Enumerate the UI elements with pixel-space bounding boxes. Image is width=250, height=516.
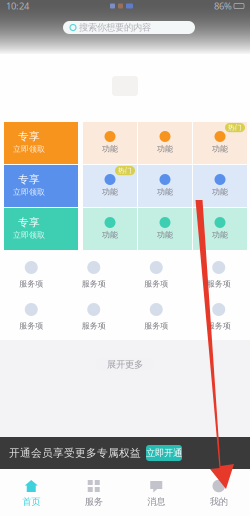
staticText: 立即领取 [13, 144, 45, 154]
staticText: 立即开通 [146, 447, 182, 459]
button[interactable]: 搜索你想要的内容 [63, 21, 195, 34]
button[interactable]: 服务项 [62, 254, 125, 296]
staticText: 立即领取 [13, 187, 45, 197]
button[interactable]: 功能 [138, 208, 192, 250]
staticText: 搜索你想要的内容 [79, 22, 151, 33]
staticText: 我的 [210, 496, 228, 507]
button[interactable]: 专享 [4, 208, 78, 250]
button[interactable]: 功能 [83, 208, 137, 250]
staticText: 功能 [157, 230, 173, 240]
staticText: 功能 [212, 230, 228, 240]
button[interactable]: 服务项 [125, 296, 187, 338]
staticText: 立即领取 [13, 230, 45, 240]
staticText: 功能 [102, 187, 118, 197]
staticText: 服务项 [82, 321, 106, 331]
staticText: 首页 [22, 496, 40, 507]
button[interactable]: 首页 [0, 469, 62, 516]
button[interactable]: 消息 [125, 469, 187, 516]
button[interactable]: 功能 [83, 122, 137, 164]
staticText: 服务 [85, 496, 103, 507]
staticText: 专享 [18, 216, 40, 229]
staticText: 功能 [157, 144, 173, 154]
button[interactable]: 服务项 [125, 254, 187, 296]
staticText: 专享 [18, 130, 40, 143]
button[interactable]: 功能 [193, 165, 247, 207]
button[interactable]: 立即开通 [146, 445, 182, 461]
staticText: 86% [214, 0, 232, 12]
staticText: 服务项 [144, 279, 168, 289]
staticText: 服务项 [144, 321, 168, 331]
staticText: 展开更多 [107, 359, 143, 370]
button[interactable]: 功能 [138, 165, 192, 207]
staticText: 服务项 [19, 321, 43, 331]
staticText: 服务项 [207, 321, 231, 331]
button[interactable]: 专享 [4, 165, 78, 207]
button[interactable]: 展开更多 [95, 358, 155, 371]
staticText: 10:24 [6, 0, 29, 12]
staticText: 消息 [147, 496, 165, 507]
button[interactable]: 功能 [83, 165, 137, 207]
button[interactable]: 服务项 [62, 296, 125, 338]
button[interactable]: 我的 [187, 469, 250, 516]
staticText: 功能 [157, 187, 173, 197]
button[interactable]: 功能 [138, 122, 192, 164]
staticText: 热门 [118, 166, 132, 175]
staticText: 服务项 [82, 279, 106, 289]
button[interactable]: 服务项 [187, 254, 250, 296]
staticText: 功能 [102, 230, 118, 240]
staticText: 功能 [212, 187, 228, 197]
staticText: 专享 [18, 173, 40, 186]
button[interactable]: 专享 [4, 122, 78, 164]
button[interactable]: 服务项 [0, 296, 62, 338]
button[interactable]: 服务项 [187, 296, 250, 338]
button[interactable]: 服务 [62, 469, 125, 516]
staticText: 功能 [102, 144, 118, 154]
staticText: 功能 [212, 144, 228, 154]
staticText: 热门 [228, 123, 242, 132]
button[interactable]: 服务项 [0, 254, 62, 296]
button[interactable]: 功能 [193, 122, 247, 164]
staticText: 服务项 [19, 279, 43, 289]
staticText: 服务项 [207, 279, 231, 289]
button[interactable]: 功能 [193, 208, 247, 250]
staticText: 开通会员享受更多专属权益 [9, 446, 141, 459]
